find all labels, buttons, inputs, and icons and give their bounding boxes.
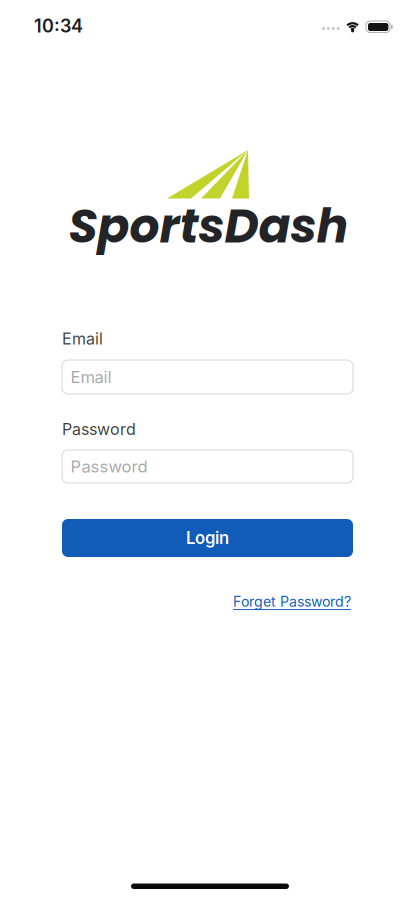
staticText: Forget Password? [233, 593, 351, 610]
staticText: Email [62, 329, 103, 348]
staticText: 10:34 [34, 15, 83, 37]
staticText: Login [186, 528, 229, 548]
staticText: Email [70, 367, 111, 387]
staticText: Password [70, 456, 147, 476]
staticText: Password [62, 419, 136, 439]
staticText: SportsDash [68, 193, 348, 259]
